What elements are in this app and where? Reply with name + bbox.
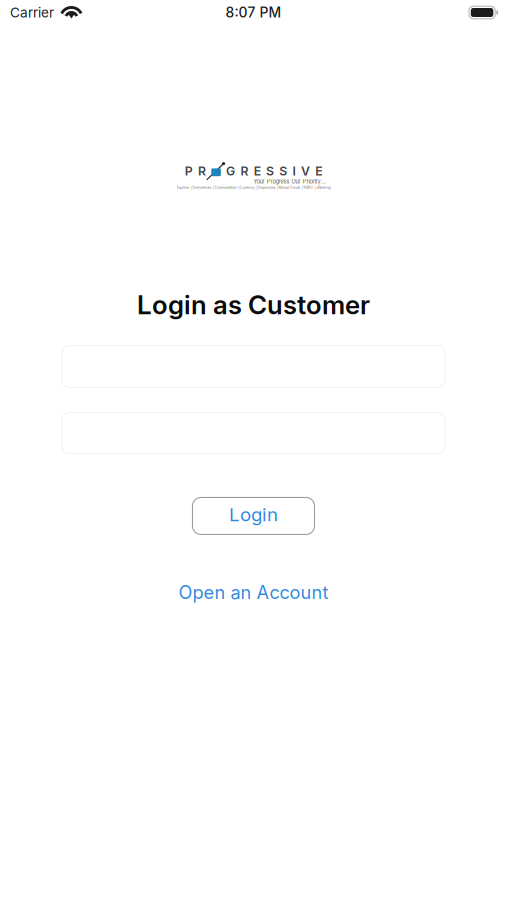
staticText: Your Progress Our Priority... bbox=[253, 178, 326, 185]
staticText: GRESSIVE bbox=[226, 164, 322, 178]
staticText: 8:07 PM bbox=[225, 4, 281, 21]
button[interactable]: Login bbox=[192, 497, 314, 534]
staticText: Equities | Derivatives | Commodities | C… bbox=[176, 185, 330, 190]
staticText: Carrier bbox=[10, 4, 54, 21]
staticText: Login as Customer bbox=[137, 289, 370, 320]
staticText: PR bbox=[185, 164, 206, 178]
staticText: Open an Account bbox=[178, 581, 328, 603]
staticText: Login bbox=[229, 503, 278, 526]
button[interactable]: Open an Account bbox=[178, 581, 328, 603]
